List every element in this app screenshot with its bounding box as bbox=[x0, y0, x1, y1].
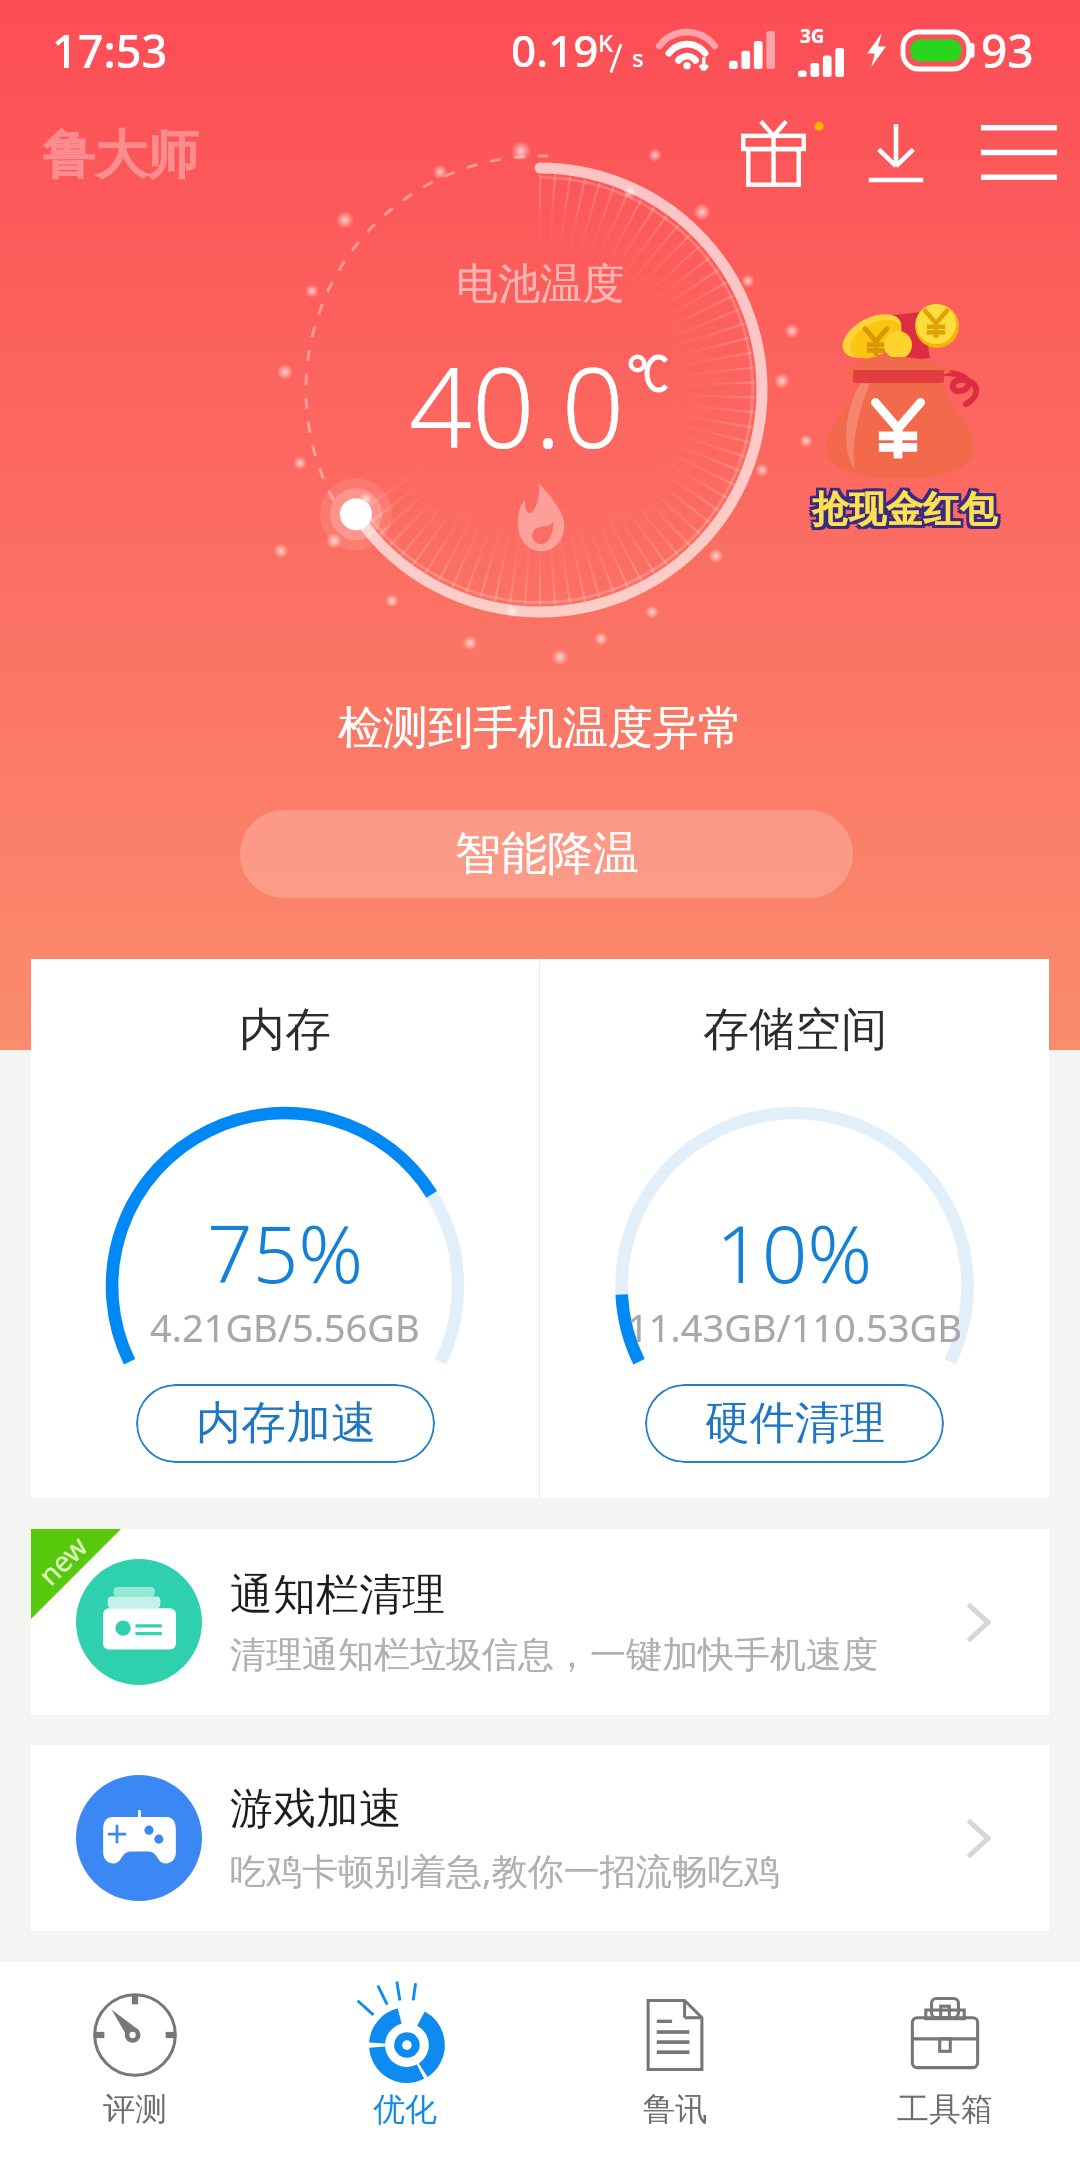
button[interactable]: 工具箱 bbox=[810, 1962, 1080, 2160]
button[interactable]: Gifts bbox=[732, 100, 838, 205]
staticText: 93 bbox=[981, 19, 1034, 82]
staticText: 17:53 bbox=[52, 20, 168, 81]
staticText: 抢现金红包 bbox=[815, 483, 1000, 530]
button[interactable]: Downloads bbox=[850, 100, 942, 205]
staticText: 内存加速 bbox=[196, 1395, 376, 1452]
staticText: 3G bbox=[800, 23, 825, 49]
staticText: new bbox=[30, 1527, 95, 1593]
button[interactable]: 内存加速 bbox=[136, 1384, 435, 1463]
button[interactable]: 智能降温 bbox=[240, 810, 853, 898]
button[interactable]: Menu bbox=[962, 100, 1076, 205]
staticText: 抢现金红包 bbox=[812, 486, 997, 533]
button[interactable]: 评测 bbox=[0, 1962, 270, 2160]
staticText: 游戏加速 bbox=[230, 1782, 402, 1836]
staticText: 优化 bbox=[373, 2089, 437, 2129]
staticText: 抢现金红包 bbox=[815, 486, 1000, 533]
staticText: 通知栏清理 bbox=[230, 1568, 445, 1622]
staticText: 抢现金红包 bbox=[809, 489, 994, 536]
staticText: 吃鸡卡顿别着急,教你一招流畅吃鸡 bbox=[230, 1846, 780, 1895]
staticText: K bbox=[598, 26, 614, 59]
staticText: 抢现金红包 bbox=[812, 489, 997, 536]
staticText: 鲁讯 bbox=[643, 2089, 707, 2129]
staticText: 鲁大师 bbox=[43, 123, 199, 189]
staticText: 检测到手机温度异常 bbox=[338, 700, 743, 757]
staticText: 硬件清理 bbox=[705, 1395, 885, 1452]
staticText: 11.43GB/110.53GB bbox=[627, 1301, 962, 1353]
button[interactable]: 硬件清理 bbox=[645, 1384, 944, 1463]
staticText: 电池温度 bbox=[456, 258, 624, 311]
staticText: 抢现金红包 bbox=[812, 483, 997, 530]
button[interactable]: new bbox=[31, 1529, 1049, 1715]
staticText: 75% bbox=[207, 1197, 364, 1306]
staticText: 抢现金红包 bbox=[809, 486, 994, 533]
staticText: 0.19 bbox=[511, 20, 599, 80]
staticText: 抢现金红包 bbox=[815, 489, 1000, 536]
staticText: 10% bbox=[716, 1197, 873, 1306]
staticText: 存储空间 bbox=[703, 1001, 887, 1059]
button[interactable]: 优化 bbox=[270, 1962, 540, 2160]
staticText: 内存 bbox=[239, 1001, 331, 1059]
button[interactable]: 鲁讯 bbox=[540, 1962, 810, 2160]
staticText: 评测 bbox=[103, 2089, 167, 2129]
staticText: 工具箱 bbox=[897, 2089, 993, 2129]
button[interactable]: 抢现金红包 bbox=[818, 296, 993, 531]
staticText: 4.21GB/5.56GB bbox=[150, 1301, 420, 1353]
staticText: s bbox=[632, 41, 644, 74]
staticText: 智能降温 bbox=[455, 825, 639, 883]
staticText: 40.0 bbox=[409, 330, 625, 480]
button[interactable]: 游戏加速 bbox=[31, 1745, 1049, 1931]
staticText: 清理通知栏垃圾信息，一键加快手机速度 bbox=[230, 1632, 878, 1677]
staticText: 抢现金红包 bbox=[809, 483, 994, 530]
